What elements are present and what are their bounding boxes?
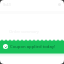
staticText: Coupon applied today! [10,44,56,50]
other: Success [3,44,8,49]
button[interactable]: Success [0,38,64,54]
staticText: 9:41 [3,2,11,7]
